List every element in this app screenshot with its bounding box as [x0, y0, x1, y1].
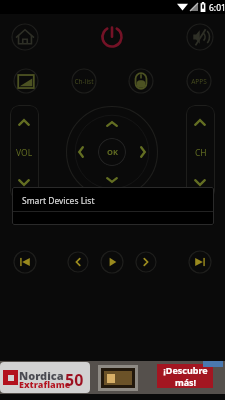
- staticText: CH: [195, 147, 207, 159]
- button[interactable]: Left: [70, 140, 92, 164]
- button[interactable]: Nordica: [0, 361, 225, 394]
- staticText: VOL: [16, 147, 33, 159]
- button[interactable]: VOL: [10, 105, 39, 200]
- button[interactable]: Rewind: [67, 251, 89, 273]
- button[interactable]: Home: [11, 23, 39, 51]
- button[interactable]: Up: [100, 113, 124, 135]
- staticText: Extraflame: [19, 378, 71, 390]
- button[interactable]: Ch-list: [71, 68, 97, 94]
- staticText: ¡Descubre más!: [163, 364, 208, 388]
- button[interactable]: Source: [13, 68, 39, 94]
- staticText: Smart Devices List: [22, 195, 95, 207]
- staticText: 6:01: [209, 2, 225, 14]
- button[interactable]: Next: [188, 250, 212, 274]
- button[interactable]: Previous: [13, 250, 37, 274]
- button[interactable]: Play: [100, 250, 124, 274]
- button[interactable]: OK: [98, 138, 126, 166]
- button[interactable]: APPS: [186, 68, 212, 94]
- staticText: Nordica: [19, 368, 64, 383]
- button[interactable]: Down: [100, 169, 124, 191]
- staticText: OK: [107, 147, 118, 157]
- button[interactable]: Power: [94, 19, 130, 55]
- staticText: APPS: [191, 77, 207, 86]
- button[interactable]: Right: [132, 140, 154, 164]
- staticText: Ch-list: [74, 77, 94, 86]
- button[interactable]: Mute: [186, 23, 214, 51]
- button[interactable]: Forward: [135, 251, 157, 273]
- button[interactable]: CH: [186, 105, 215, 200]
- staticText: 50: [65, 369, 84, 391]
- button[interactable]: Mouse: [128, 68, 154, 94]
